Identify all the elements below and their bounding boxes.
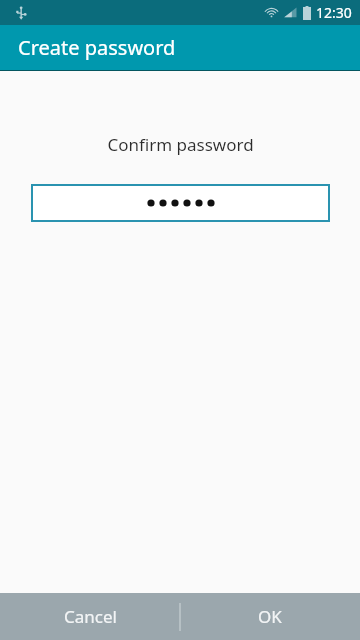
button[interactable] <box>31 184 330 222</box>
staticText: 12:30 <box>316 3 352 22</box>
staticText: Create password <box>18 34 176 61</box>
staticText: OK <box>258 605 282 628</box>
button[interactable]: Cancel <box>0 593 180 640</box>
staticText: Confirm password <box>107 133 254 156</box>
button[interactable]: OK <box>180 593 360 640</box>
staticText: Cancel <box>64 605 117 628</box>
